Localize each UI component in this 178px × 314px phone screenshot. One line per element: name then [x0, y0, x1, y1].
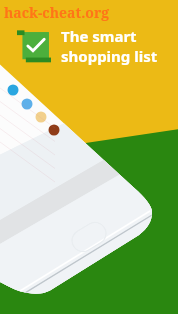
staticText: hack-cheat.org	[4, 3, 110, 22]
staticText: The smart	[61, 26, 137, 46]
staticText: shopping list	[61, 46, 158, 66]
